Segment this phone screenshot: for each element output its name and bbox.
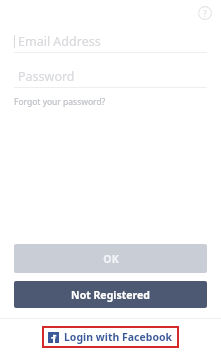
- staticText: Not Registered: [71, 288, 150, 302]
- staticText: Forgot your password?: [14, 96, 106, 108]
- button[interactable]: Not Registered: [14, 281, 207, 308]
- button[interactable]: OK: [14, 244, 207, 273]
- staticText: OK: [103, 252, 119, 266]
- button[interactable]: Password: [0, 65, 221, 87]
- staticText: Email Address: [18, 33, 101, 50]
- button[interactable]: Forgot your password?: [14, 96, 106, 108]
- button[interactable]: Email Address: [0, 30, 221, 52]
- button[interactable]: Login with Facebook: [42, 326, 179, 348]
- staticText: ?: [203, 7, 207, 19]
- staticText: Login with Facebook: [64, 330, 173, 344]
- staticText: Password: [18, 68, 75, 85]
- button[interactable]: Help: [198, 6, 212, 20]
